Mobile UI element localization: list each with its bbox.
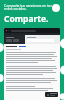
staticText: Comparte.: [4, 13, 49, 25]
button[interactable]: Reproducir: [45, 92, 58, 97]
button[interactable]: Reproducir: [4, 28, 60, 100]
staticText: Comparte tus canciones en tus redes soci…: [4, 3, 57, 11]
